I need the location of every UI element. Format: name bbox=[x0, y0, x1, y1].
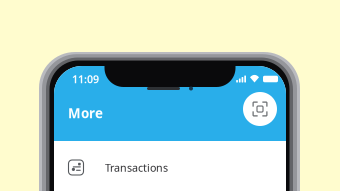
staticText: 11:09 bbox=[72, 72, 99, 86]
staticText: More bbox=[68, 104, 103, 122]
staticText: Transactions bbox=[105, 160, 168, 175]
button[interactable]: Scan bbox=[243, 92, 277, 126]
button[interactable]: Transactions bbox=[54, 151, 286, 184]
